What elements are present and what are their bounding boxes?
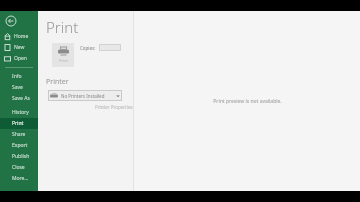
staticText: Print (12, 120, 24, 127)
button[interactable]: No Printers Installed (48, 90, 122, 101)
button[interactable]: Share (0, 129, 38, 140)
staticText: Print preview is not available. (213, 98, 282, 105)
staticText: Export (12, 142, 28, 149)
button[interactable]: Save (0, 82, 38, 93)
staticText: Share (12, 131, 26, 138)
staticText: Publish (12, 153, 30, 160)
button[interactable]: Export (0, 140, 38, 151)
button[interactable]: Print (52, 43, 74, 67)
button[interactable]: Close (0, 162, 38, 173)
button[interactable]: Back (5, 15, 17, 27)
button[interactable]: Info (0, 71, 38, 82)
staticText: History (12, 109, 29, 116)
staticText: Home (14, 33, 29, 40)
button[interactable]: Printer Properties (46, 104, 133, 110)
button[interactable]: Open (0, 53, 38, 64)
staticText: Printer (46, 77, 69, 87)
staticText: Info (12, 73, 22, 80)
staticText: Save As (12, 95, 30, 102)
staticText: Print (59, 58, 69, 63)
staticText: Print (46, 17, 79, 37)
button[interactable]: Copies (99, 44, 121, 51)
staticText: Open (14, 55, 27, 62)
staticText: More... (12, 175, 29, 182)
button[interactable]: More... (0, 173, 38, 184)
button[interactable]: Print (0, 118, 38, 129)
button[interactable]: Save As (0, 93, 38, 104)
staticText: Printer Properties (95, 104, 133, 110)
button[interactable]: New (0, 42, 38, 53)
staticText: No Printers Installed (61, 93, 105, 99)
button[interactable]: History (0, 107, 38, 118)
staticText: Close (12, 164, 25, 171)
staticText: Copies: (80, 45, 96, 51)
staticText: New (14, 44, 25, 51)
button[interactable]: Publish (0, 151, 38, 162)
button[interactable]: Home (0, 31, 38, 42)
staticText: Save (12, 84, 23, 91)
